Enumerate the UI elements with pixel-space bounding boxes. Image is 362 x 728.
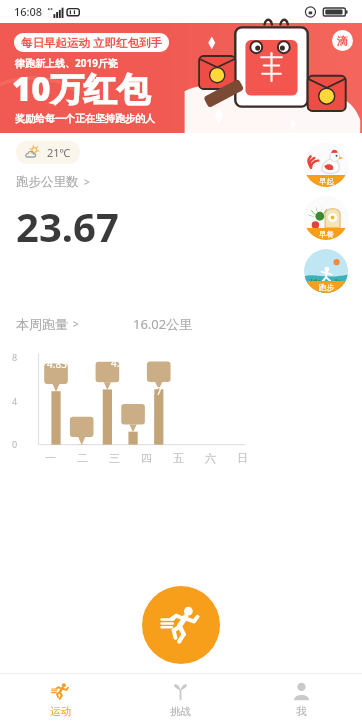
staticText: 四 [141,451,152,465]
staticText: 五 [173,451,184,465]
button[interactable]: 21℃ [16,141,80,164]
staticText: 本周跑量 [16,316,68,332]
staticText: 一 [45,451,56,465]
staticText: > [73,317,79,331]
button[interactable]: 早餐 [304,196,348,240]
button[interactable]: 跑步公里数 [16,174,90,190]
button[interactable]: 本周跑量 [16,316,79,332]
staticText: 5.01 [169,355,199,369]
staticText: 每日早起运动 立即红包到手 [21,35,162,51]
staticText: 日 [237,451,248,465]
staticText: 1.17 [137,384,167,398]
staticText: 0.02 [74,398,104,412]
staticText: 六 [205,451,216,465]
staticText: 8 [12,351,18,363]
button[interactable]: 挑战 [120,674,241,728]
staticText: 运动 [50,705,71,718]
button[interactable]: 运动 [0,674,120,728]
staticText: 滴 [337,34,348,48]
staticText: 16:08 [14,4,43,19]
button[interactable]: 我 [241,674,362,728]
staticText: 跑步 [319,283,334,292]
staticText: 4 [12,395,18,407]
staticText: 0 [12,438,18,450]
staticText: 挑战 [170,705,191,718]
staticText: 21℃ [47,145,71,160]
staticText: 跑步公里数 [16,174,79,190]
button[interactable]: 早起 [304,143,348,187]
staticText: 奖励给每一个正在坚持跑步的人 [15,112,155,125]
staticText: 4.83 [42,357,72,371]
staticText: 16.02公里 [133,315,193,333]
button[interactable]: 跑步 [304,249,348,293]
staticText: 二 [77,451,88,465]
staticText: 三 [109,451,120,465]
staticText: 我 [296,705,307,718]
staticText: 4.99 [106,356,136,370]
staticText: 律跑新上线、2019斤瓷 [15,56,118,70]
button[interactable]: 开始跑步 [142,586,220,664]
staticText: 早起 [319,177,334,186]
staticText: 早餐 [319,230,334,239]
staticText: 23.67 [16,199,119,253]
staticText: > [84,175,90,189]
staticText: 10万红包 [12,66,150,111]
button[interactable]: 每日早起运动 立即红包到手 [0,23,362,133]
